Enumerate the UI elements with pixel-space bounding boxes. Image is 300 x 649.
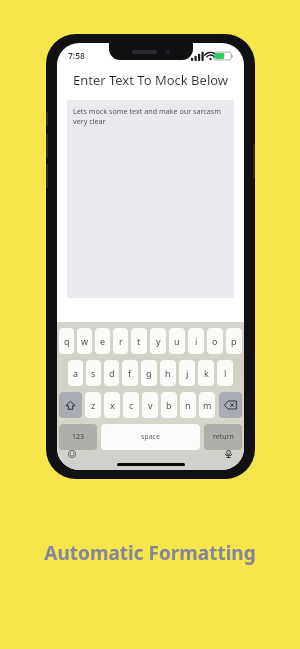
staticText: Lets mock some text and make our sarcasm… <box>73 106 228 126</box>
staticText: w <box>81 335 89 347</box>
staticText: j <box>186 367 189 379</box>
button[interactable]: n <box>180 392 196 418</box>
button[interactable]: Emoji <box>65 450 81 458</box>
button[interactable]: w <box>77 328 92 354</box>
staticText: d <box>109 367 115 379</box>
button[interactable]: v <box>142 392 158 418</box>
button[interactable]: a <box>68 360 83 386</box>
staticText: q <box>64 335 70 347</box>
button[interactable]: b <box>161 392 177 418</box>
button[interactable]: Dictation <box>220 450 236 458</box>
staticText: Enter Text To Mock Below <box>57 71 244 89</box>
button[interactable]: g <box>141 360 157 386</box>
button[interactable]: t <box>131 328 147 354</box>
staticText: p <box>231 335 237 347</box>
button[interactable]: l <box>217 360 233 386</box>
staticText: 7:58 <box>68 50 85 62</box>
button[interactable]: m <box>199 392 215 418</box>
staticText: a <box>73 367 79 379</box>
staticText: m <box>203 399 212 411</box>
staticText: n <box>185 399 191 411</box>
staticText: r <box>119 335 123 347</box>
button[interactable]: q <box>59 328 74 354</box>
button[interactable]: space <box>101 424 200 450</box>
staticText: c <box>129 399 134 411</box>
button[interactable]: f <box>122 360 138 386</box>
button[interactable]: y <box>150 328 166 354</box>
button[interactable]: u <box>169 328 185 354</box>
staticText: g <box>146 367 152 379</box>
staticText: l <box>224 367 227 379</box>
staticText: u <box>174 335 180 347</box>
staticText: v <box>148 399 153 411</box>
button[interactable]: z <box>85 392 101 418</box>
button[interactable]: return <box>204 424 242 450</box>
staticText: i <box>195 335 198 347</box>
button[interactable]: o <box>207 328 223 354</box>
staticText: space <box>141 432 160 442</box>
staticText: x <box>110 399 115 411</box>
button[interactable]: Backspace <box>219 392 242 418</box>
button[interactable]: Lets mock some text and make our sarcasm… <box>67 100 234 298</box>
button[interactable]: 123 <box>59 424 97 450</box>
staticText: f <box>128 367 132 379</box>
button[interactable]: k <box>198 360 214 386</box>
staticText: Automatic Formatting <box>0 540 300 566</box>
staticText: k <box>204 367 209 379</box>
staticText: t <box>137 335 141 347</box>
staticText: h <box>165 367 171 379</box>
button[interactable]: e <box>95 328 110 354</box>
button[interactable]: j <box>179 360 195 386</box>
button[interactable]: p <box>226 328 242 354</box>
button[interactable]: c <box>123 392 139 418</box>
staticText: s <box>91 367 96 379</box>
staticText: e <box>100 335 106 347</box>
staticText: return <box>213 432 234 442</box>
staticText: b <box>166 399 172 411</box>
staticText: y <box>156 335 161 347</box>
staticText: 123 <box>72 432 85 442</box>
button[interactable]: s <box>86 360 101 386</box>
button[interactable]: Shift <box>59 392 82 418</box>
staticText: z <box>91 399 96 411</box>
button[interactable]: x <box>104 392 120 418</box>
button[interactable]: i <box>188 328 204 354</box>
button[interactable]: r <box>113 328 128 354</box>
button[interactable]: h <box>160 360 176 386</box>
staticText: o <box>212 335 218 347</box>
button[interactable]: d <box>104 360 119 386</box>
